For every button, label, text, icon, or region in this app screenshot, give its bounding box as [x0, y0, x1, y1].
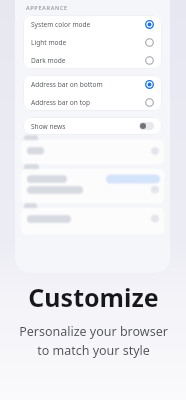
staticText: Address bar on top	[31, 98, 145, 107]
staticText: Personalize your browser	[19, 323, 168, 340]
button[interactable]: Show news	[23, 117, 162, 135]
staticText: System color mode	[31, 20, 145, 29]
staticText: Dark mode	[31, 56, 145, 65]
staticText: Show news	[31, 122, 139, 131]
button[interactable]: Address bar on bottom	[23, 75, 162, 93]
button[interactable]: Address bar on top	[23, 93, 162, 111]
staticText: to match your style	[37, 342, 150, 359]
staticText: Light mode	[31, 38, 145, 47]
button[interactable]: System color mode	[23, 15, 162, 33]
staticText: Address bar on bottom	[31, 80, 145, 89]
staticText: APPEARANCE	[26, 4, 68, 11]
staticText: Customize	[28, 280, 159, 314]
button[interactable]: Light mode	[23, 33, 162, 51]
other: Show news toggle	[139, 122, 154, 130]
button[interactable]: Dark mode	[23, 51, 162, 69]
